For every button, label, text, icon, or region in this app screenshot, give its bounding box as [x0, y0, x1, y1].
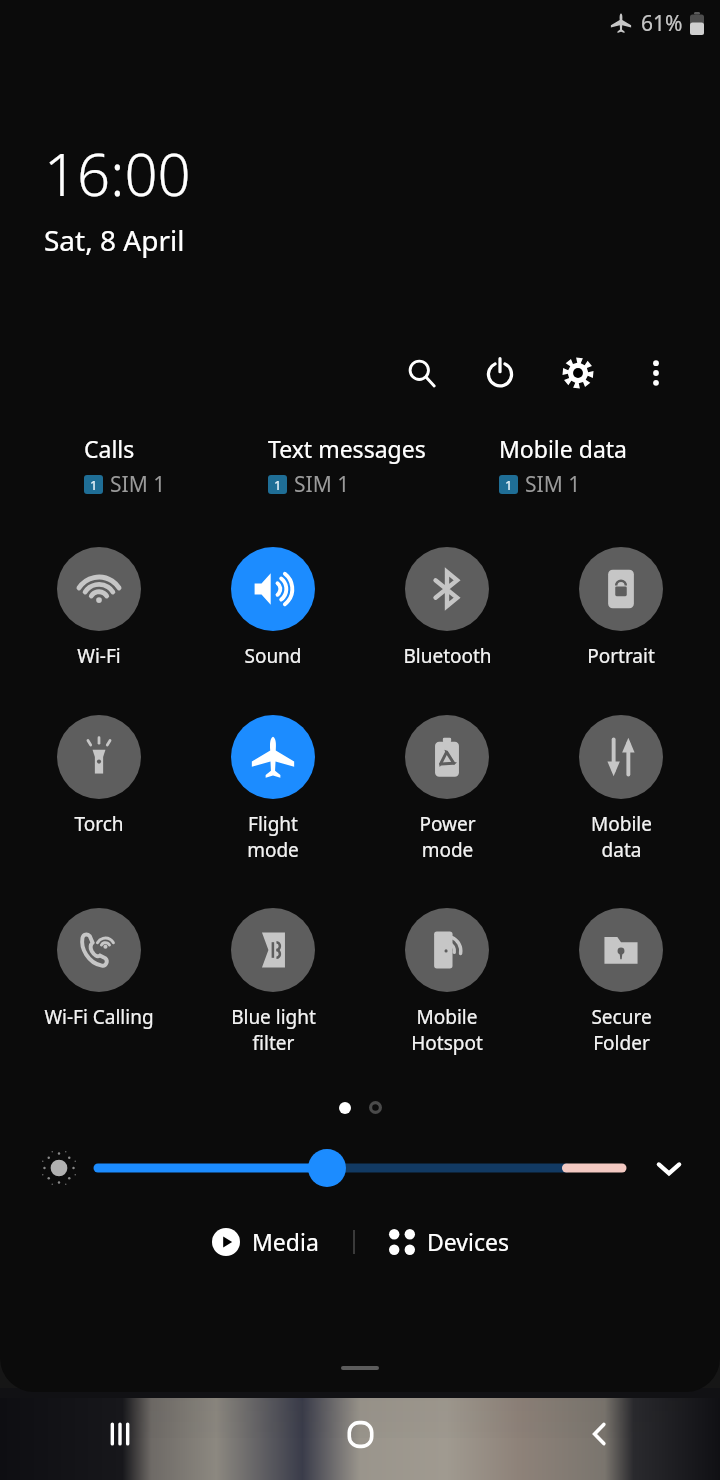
staticText: 1: [274, 476, 282, 494]
button[interactable]: Back: [480, 1388, 720, 1480]
staticText: Sound: [244, 643, 302, 669]
button[interactable]: Auto brightness: [34, 1143, 84, 1193]
staticText: Mobile data: [499, 433, 627, 464]
staticText: Torch: [74, 811, 124, 837]
button[interactable]: Text messages: [268, 431, 499, 501]
staticText: Secure Folder: [591, 1004, 652, 1055]
button[interactable]: Mobile data: [499, 431, 684, 501]
button[interactable]: Sound: [186, 545, 360, 671]
staticText: Mobile Hotspot: [411, 1004, 483, 1055]
button[interactable]: More options: [630, 347, 682, 399]
button[interactable]: Power off: [474, 347, 526, 399]
button[interactable]: Mobile Hotspot: [360, 906, 534, 1057]
staticText: Wi-Fi: [77, 643, 121, 669]
button[interactable]: Power mode: [360, 713, 534, 864]
staticText: Text messages: [268, 433, 426, 464]
button[interactable]: Flight mode: [186, 713, 360, 864]
button[interactable]: Brightness: [98, 1144, 622, 1192]
staticText: 1: [90, 476, 98, 494]
staticText: Wi-Fi Calling: [44, 1004, 154, 1030]
button[interactable]: Wi-Fi Calling: [12, 906, 186, 1032]
button[interactable]: Settings: [552, 347, 604, 399]
button[interactable]: Calls: [84, 431, 268, 501]
button[interactable]: Home: [240, 1388, 480, 1480]
staticText: Devices: [427, 1226, 509, 1257]
button[interactable]: Secure Folder: [534, 906, 708, 1057]
button[interactable]: Blue light filter: [186, 906, 360, 1057]
staticText: Power mode: [419, 811, 476, 862]
staticText: Bluetooth: [403, 643, 492, 669]
staticText: Mobile data: [591, 811, 652, 862]
staticText: 1: [505, 476, 513, 494]
button[interactable]: Bluetooth: [360, 545, 534, 671]
staticText: Portrait: [587, 643, 655, 669]
staticText: 16:00: [44, 134, 191, 213]
button[interactable]: Wi-Fi: [12, 545, 186, 671]
staticText: Media: [252, 1226, 319, 1257]
staticText: Blue light filter: [231, 1004, 316, 1055]
staticText: SIM 1: [110, 470, 166, 499]
button[interactable]: Media: [202, 1218, 329, 1265]
staticText: 61%: [641, 9, 683, 38]
button[interactable]: Mobile data: [534, 713, 708, 864]
staticText: Flight mode: [247, 811, 299, 862]
button[interactable]: Devices: [379, 1218, 519, 1265]
button[interactable]: Expand brightness settings: [644, 1143, 694, 1193]
button[interactable]: Search: [396, 347, 448, 399]
staticText: SIM 1: [525, 470, 581, 499]
button[interactable]: Recent apps: [0, 1388, 240, 1480]
button[interactable]: Portrait: [534, 545, 708, 671]
staticText: Calls: [84, 433, 135, 464]
staticText: Sat, 8 April: [44, 221, 185, 259]
staticText: SIM 1: [294, 470, 350, 499]
button[interactable]: Torch: [12, 713, 186, 839]
